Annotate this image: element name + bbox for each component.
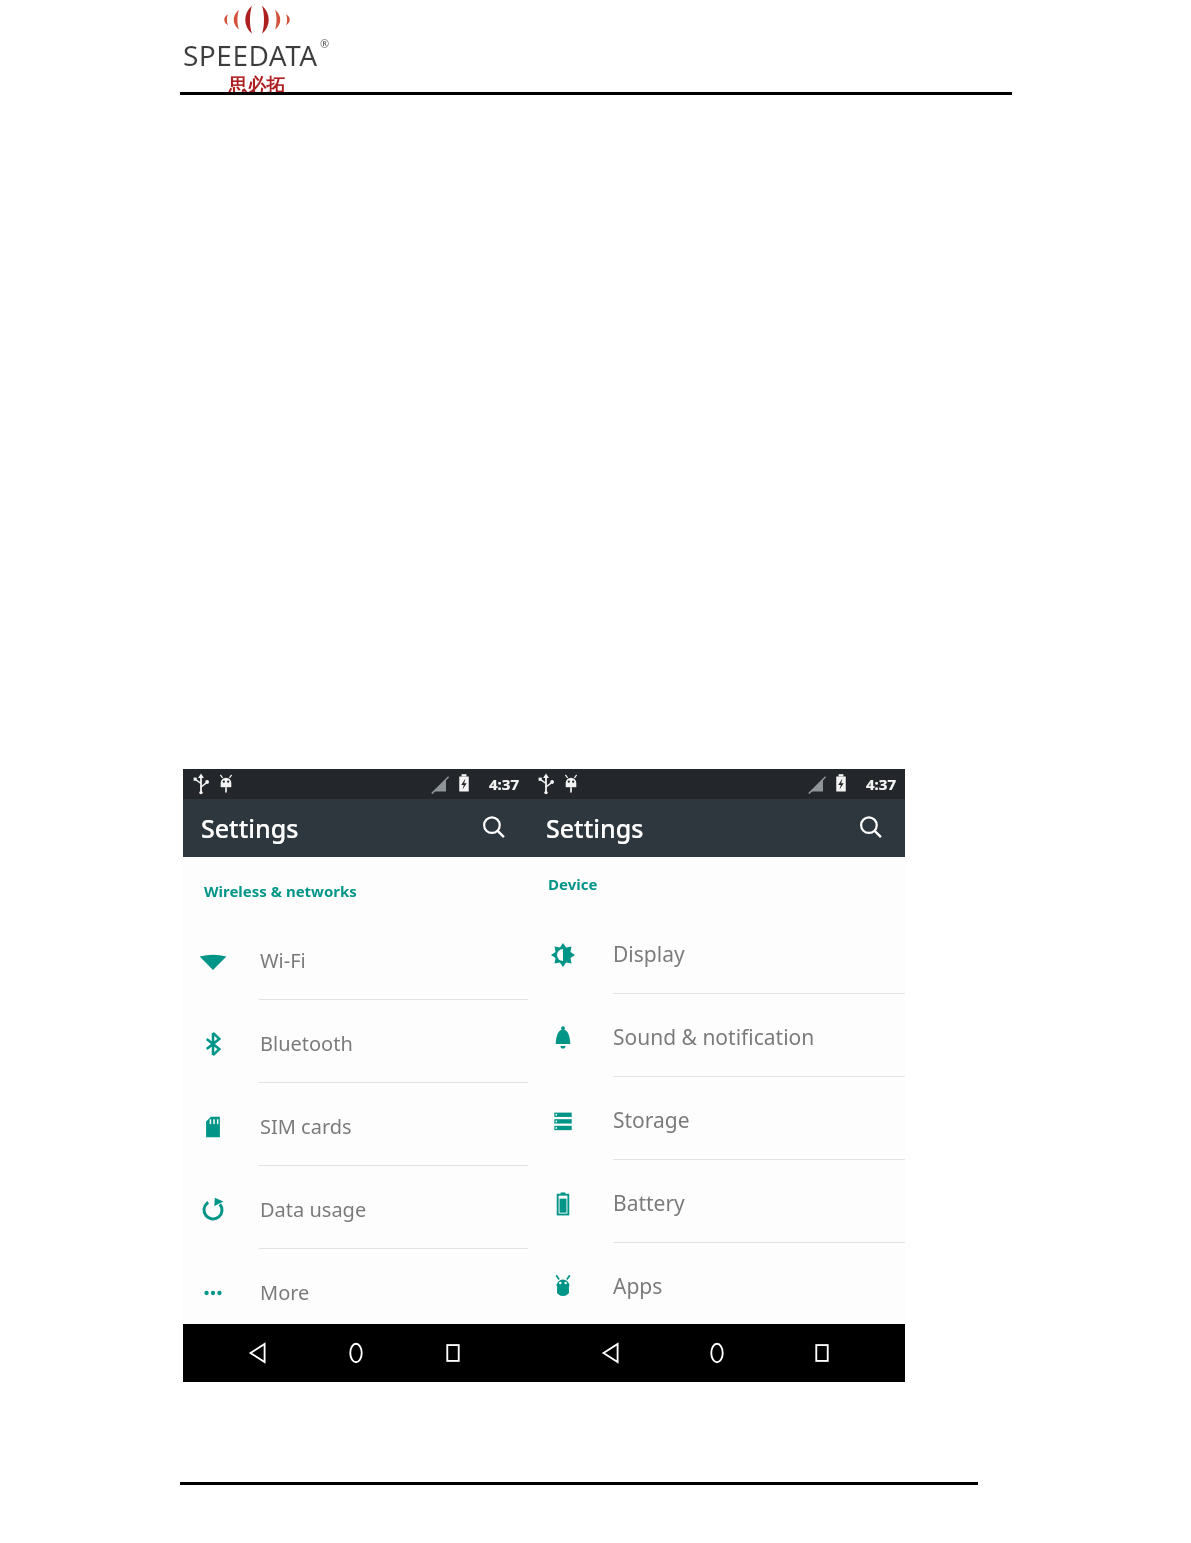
staticText: 思必拓	[228, 74, 285, 98]
button[interactable]: Storage	[528, 1079, 905, 1162]
staticText: Bluetooth	[260, 1030, 353, 1057]
staticText: Settings	[201, 811, 299, 845]
button[interactable]: Settings	[201, 811, 299, 845]
staticText: 4:37	[866, 774, 896, 794]
button[interactable]: Recent apps	[799, 1330, 845, 1376]
staticText: Settings	[546, 811, 644, 845]
staticText: Display	[613, 940, 685, 969]
button[interactable]: Display	[528, 913, 905, 996]
button[interactable]: Search	[851, 808, 891, 848]
button[interactable]: Home	[333, 1330, 379, 1376]
button[interactable]: Wi-Fi	[183, 919, 528, 1002]
button[interactable]: Back	[588, 1330, 634, 1376]
staticText: Device	[548, 874, 598, 894]
staticText: SIM cards	[260, 1113, 352, 1140]
button[interactable]: Home	[694, 1330, 740, 1376]
button[interactable]: Battery	[528, 1162, 905, 1245]
staticText: Storage	[613, 1106, 690, 1135]
staticText: More	[260, 1279, 310, 1306]
button[interactable]: Recent apps	[430, 1330, 476, 1376]
staticText: Wireless & networks	[204, 881, 357, 901]
staticText: Battery	[613, 1189, 685, 1218]
button[interactable]: More	[183, 1251, 528, 1334]
button[interactable]: Data usage	[183, 1168, 528, 1251]
staticText: Apps	[613, 1272, 663, 1301]
button[interactable]: Sound & notification	[528, 996, 905, 1079]
staticText: Wi-Fi	[260, 947, 306, 974]
button[interactable]: Search	[474, 808, 514, 848]
staticText: Sound & notification	[613, 1023, 815, 1052]
button[interactable]: Settings	[546, 811, 644, 845]
staticText: Data usage	[260, 1196, 367, 1223]
button[interactable]: Back	[235, 1330, 281, 1376]
button[interactable]: Apps	[528, 1245, 905, 1328]
button[interactable]: Bluetooth	[183, 1002, 528, 1085]
staticText: 4:37	[489, 774, 519, 794]
staticText: ®	[320, 36, 330, 51]
staticText: SPEEDATA	[183, 36, 318, 74]
button[interactable]: SIM cards	[183, 1085, 528, 1168]
